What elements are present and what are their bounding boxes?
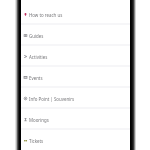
button[interactable]: Guides	[21, 25, 130, 46]
button[interactable]: How to reach us	[21, 4, 130, 25]
staticText: Events	[29, 75, 43, 81]
button[interactable]: Activities	[21, 46, 130, 67]
button[interactable]: Events	[21, 67, 130, 88]
staticText: Activities	[29, 54, 48, 60]
staticText: Info Point | Souvenirs	[29, 96, 75, 102]
staticText: Guides	[29, 33, 44, 39]
staticText: Moorings	[29, 117, 49, 123]
button[interactable]: Info Point | Souvenirs	[21, 88, 130, 109]
button[interactable]: Moorings	[21, 109, 130, 130]
staticText: How to reach us	[29, 12, 63, 18]
button[interactable]: Tickets	[21, 130, 130, 150]
staticText: Tickets	[29, 138, 44, 144]
